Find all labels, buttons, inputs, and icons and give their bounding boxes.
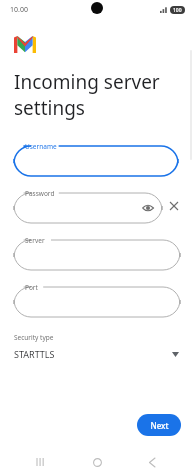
button[interactable]: Password xyxy=(14,189,162,223)
button[interactable]: Clear password xyxy=(166,198,182,214)
button[interactable]: Recent apps xyxy=(26,450,56,474)
staticText: Next xyxy=(150,420,169,431)
staticText: Incoming server settings xyxy=(14,69,160,120)
button[interactable]: Next xyxy=(137,414,181,436)
button[interactable]: Security type xyxy=(0,333,193,360)
staticText: Port xyxy=(25,283,38,292)
button[interactable]: Show password xyxy=(141,201,155,215)
staticText: 100 xyxy=(173,7,182,14)
button[interactable]: Username xyxy=(14,142,178,176)
button[interactable]: Back xyxy=(137,450,167,474)
staticText: Security type xyxy=(14,333,54,342)
staticText: Server xyxy=(25,236,45,245)
staticText: 10.00 xyxy=(10,5,28,15)
button[interactable]: Port xyxy=(14,283,180,317)
staticText: STARTTLS xyxy=(14,348,55,360)
staticText: Password xyxy=(25,189,55,198)
button[interactable]: Server xyxy=(14,236,180,270)
staticText: Username xyxy=(25,142,57,151)
button[interactable]: Home xyxy=(82,450,112,474)
